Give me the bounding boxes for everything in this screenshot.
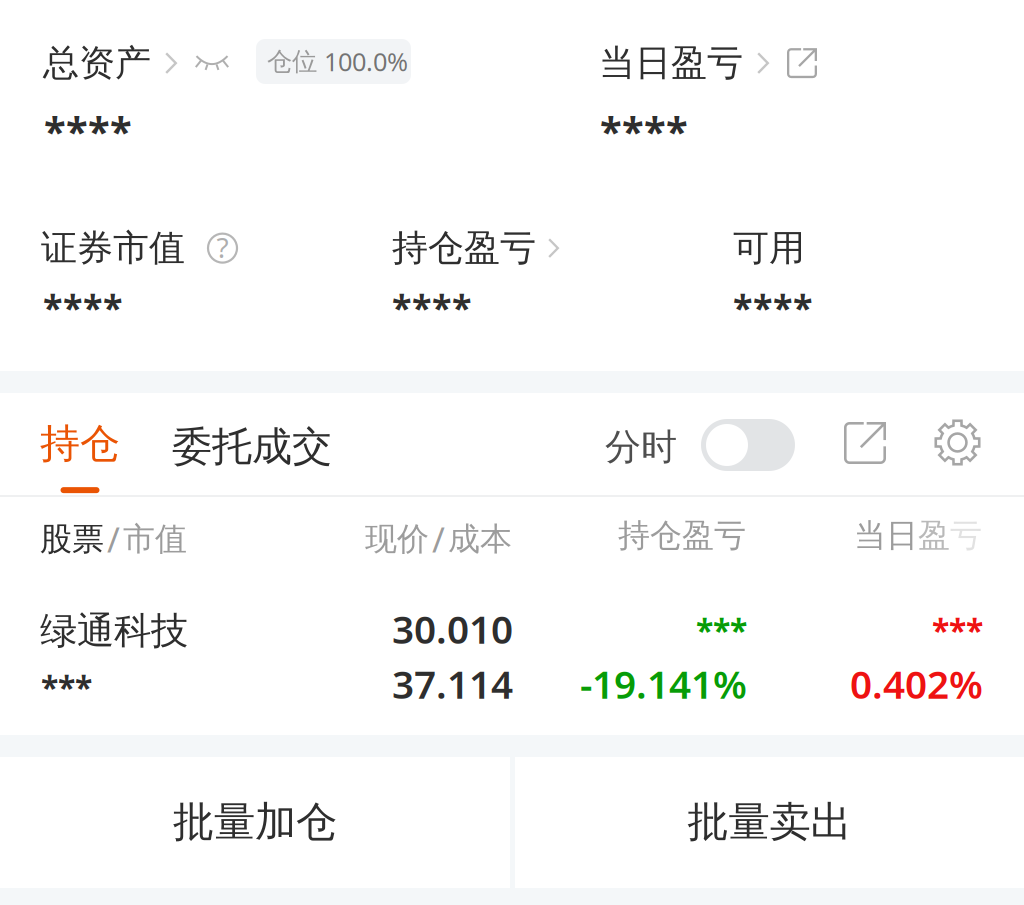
staticText: 仓位: [267, 46, 317, 77]
staticText: ****: [43, 283, 123, 331]
staticText: ****: [733, 283, 813, 331]
staticText: 现价: [365, 519, 429, 559]
button[interactable]: 持仓盈亏: [392, 226, 559, 270]
staticText: ****: [392, 283, 472, 331]
staticText: 持仓盈亏: [618, 516, 746, 555]
button[interactable]: 分时开关: [701, 419, 795, 471]
staticText: 可用: [733, 226, 805, 270]
staticText: /: [107, 516, 120, 562]
staticText: /: [432, 516, 445, 562]
staticText: 持仓盈亏: [392, 226, 536, 270]
staticText: 分时: [605, 425, 677, 469]
button[interactable]: 委托成交: [172, 422, 332, 471]
staticText: ?: [216, 228, 228, 266]
staticText: -19.141%: [580, 658, 747, 709]
staticText: 批量卖出: [687, 797, 851, 847]
staticText: 盈: [918, 516, 950, 555]
button[interactable]: 设置: [934, 419, 981, 466]
button[interactable]: 总资产: [43, 41, 229, 85]
button[interactable]: 绿通科技: [0, 600, 1024, 720]
staticText: 0.402%: [850, 658, 983, 709]
button[interactable]: 分享: [844, 422, 886, 464]
staticText: 市值: [123, 519, 187, 559]
staticText: 37.114: [392, 658, 513, 709]
staticText: ***: [932, 609, 983, 651]
staticText: ****: [44, 104, 132, 157]
button[interactable]: 批量卖出: [515, 757, 1024, 887]
staticText: 总资产: [43, 41, 151, 85]
staticText: 持仓: [40, 419, 120, 468]
staticText: 委托成交: [172, 422, 332, 471]
button[interactable]: 仓位: [256, 39, 411, 84]
staticText: 亏: [950, 516, 982, 555]
staticText: 证券市值: [41, 226, 185, 270]
staticText: 30.010: [392, 603, 513, 654]
button[interactable]: 持仓: [40, 419, 120, 493]
staticText: ***: [41, 666, 92, 708]
staticText: 成本: [448, 519, 512, 559]
button[interactable]: 证券市值: [41, 226, 238, 270]
staticText: ***: [696, 609, 747, 651]
staticText: 股票: [40, 519, 104, 559]
staticText: 绿通科技: [40, 608, 188, 654]
staticText: ****: [600, 104, 688, 157]
button[interactable]: 批量加仓: [0, 757, 510, 887]
staticText: 当日盈亏: [599, 41, 743, 85]
staticText: 100.0%: [324, 45, 408, 78]
button[interactable]: 当日盈亏: [599, 41, 817, 85]
staticText: 当日: [854, 516, 918, 555]
staticText: 批量加仓: [173, 797, 337, 847]
